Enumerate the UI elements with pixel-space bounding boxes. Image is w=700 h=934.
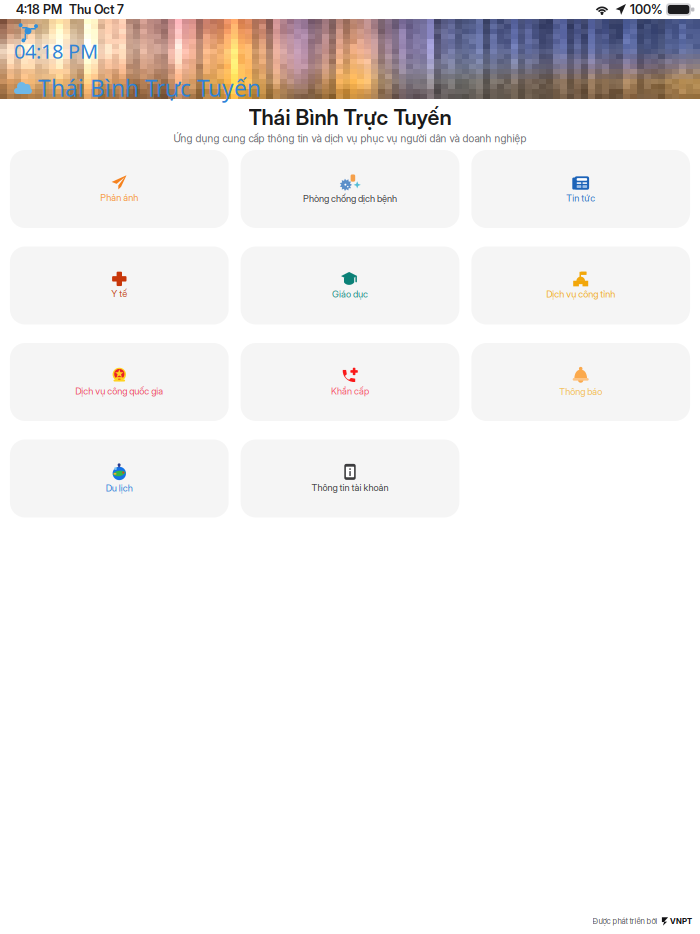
staticText: 4:18 PM bbox=[16, 2, 62, 17]
button[interactable]: Y tế bbox=[10, 246, 229, 324]
button[interactable]: Thông tin tài khoản bbox=[241, 439, 459, 517]
staticText: Phản ánh bbox=[100, 192, 138, 203]
staticText: Được phát triển bởi bbox=[592, 916, 657, 926]
button[interactable]: Phòng chống dịch bệnh bbox=[241, 150, 459, 228]
staticText: Thái Bình Trực Tuyến bbox=[248, 104, 451, 130]
staticText: Giáo dục bbox=[332, 288, 368, 300]
staticText: 100% bbox=[630, 2, 662, 17]
staticText: Thái Bình Trực Tuyến bbox=[38, 73, 261, 103]
button[interactable]: Khẩn cấp bbox=[241, 343, 459, 421]
staticText: Thông tin tài khoản bbox=[311, 482, 388, 493]
staticText: Ứng dụng cung cấp thông tin và dịch vụ p… bbox=[173, 132, 526, 145]
button[interactable]: Phản ánh bbox=[10, 150, 229, 228]
button[interactable]: Giáo dục bbox=[241, 246, 459, 324]
staticText: 04:18 PM bbox=[14, 38, 98, 64]
staticText: Y tế bbox=[111, 288, 127, 299]
staticText: Dịch vụ công quốc gia bbox=[75, 385, 163, 397]
button[interactable]: Du lịch bbox=[10, 439, 229, 517]
staticText: Thu Oct 7 bbox=[69, 2, 124, 17]
staticText: Du lịch bbox=[106, 482, 133, 494]
button[interactable]: Thông báo bbox=[471, 343, 690, 421]
button[interactable]: Dịch vụ công tỉnh bbox=[471, 246, 690, 324]
staticText: Thông báo bbox=[559, 386, 602, 397]
staticText: Tin tức bbox=[566, 192, 595, 204]
staticText: Dịch vụ công tỉnh bbox=[546, 288, 615, 300]
staticText: Khẩn cấp bbox=[331, 385, 369, 397]
staticText: Phòng chống dịch bệnh bbox=[303, 193, 397, 204]
button[interactable]: Dịch vụ công quốc gia bbox=[10, 343, 229, 421]
button[interactable]: Tin tức bbox=[471, 150, 690, 228]
staticText: VNPT bbox=[670, 916, 692, 926]
